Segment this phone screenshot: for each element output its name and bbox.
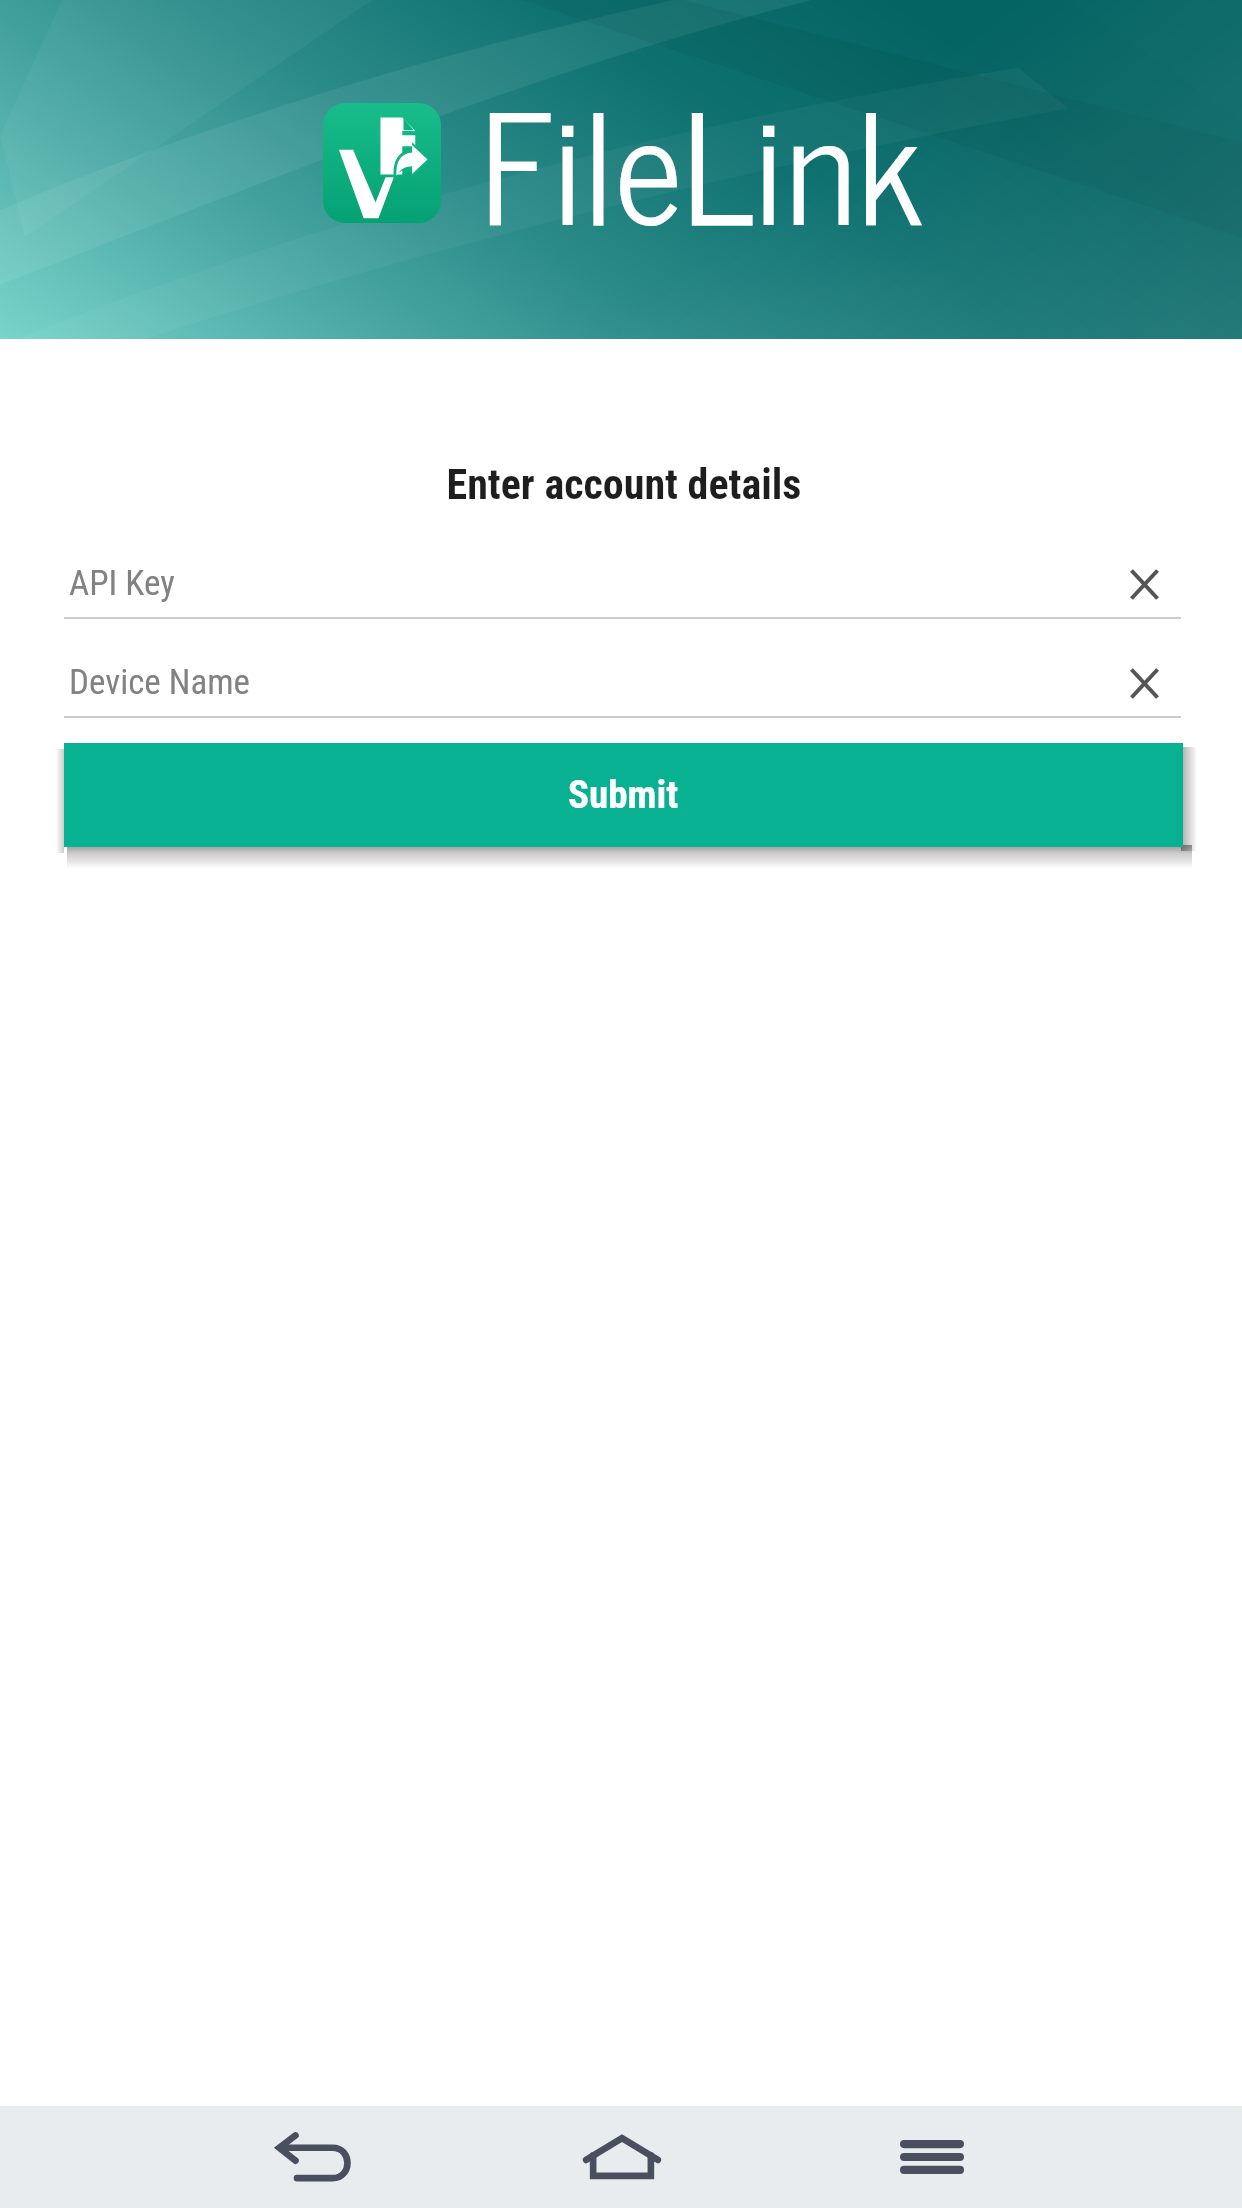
staticText: Submit — [568, 772, 679, 818]
staticText: FileLink — [480, 35, 924, 283]
button[interactable]: Recent apps — [852, 2110, 1012, 2204]
button[interactable]: Back — [234, 2110, 394, 2204]
staticText: Enter account details — [3, 460, 1242, 509]
staticText: Device Name — [69, 662, 250, 703]
button[interactable]: Submit — [64, 743, 1183, 847]
button[interactable]: Device Name — [64, 653, 1104, 718]
button[interactable]: Clear Device Name — [1104, 653, 1184, 713]
button[interactable]: API Key — [64, 554, 1104, 619]
staticText: API Key — [69, 563, 175, 604]
button[interactable]: Home — [542, 2110, 702, 2204]
button[interactable]: Clear API Key — [1104, 554, 1184, 614]
